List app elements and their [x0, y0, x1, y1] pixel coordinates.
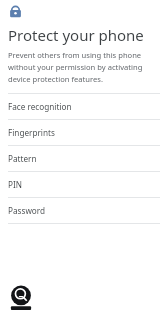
staticText: Fingerprints	[8, 127, 55, 138]
button[interactable]: PIN	[0, 172, 168, 197]
button[interactable]: Password	[0, 198, 168, 223]
other: Watermark logo	[6, 284, 36, 314]
button[interactable]: Fingerprints	[0, 120, 168, 145]
button[interactable]: Pattern	[0, 146, 168, 171]
staticText: Protect your phone	[8, 25, 144, 45]
staticText: Password	[8, 205, 46, 216]
staticText: Prevent others from using this phone wit…	[8, 50, 158, 84]
staticText: PIN	[8, 179, 22, 190]
staticText: Face recognition	[8, 101, 72, 112]
button[interactable]: Face recognition	[0, 94, 168, 119]
other: Security lock	[8, 4, 23, 19]
staticText: Pattern	[8, 153, 37, 164]
